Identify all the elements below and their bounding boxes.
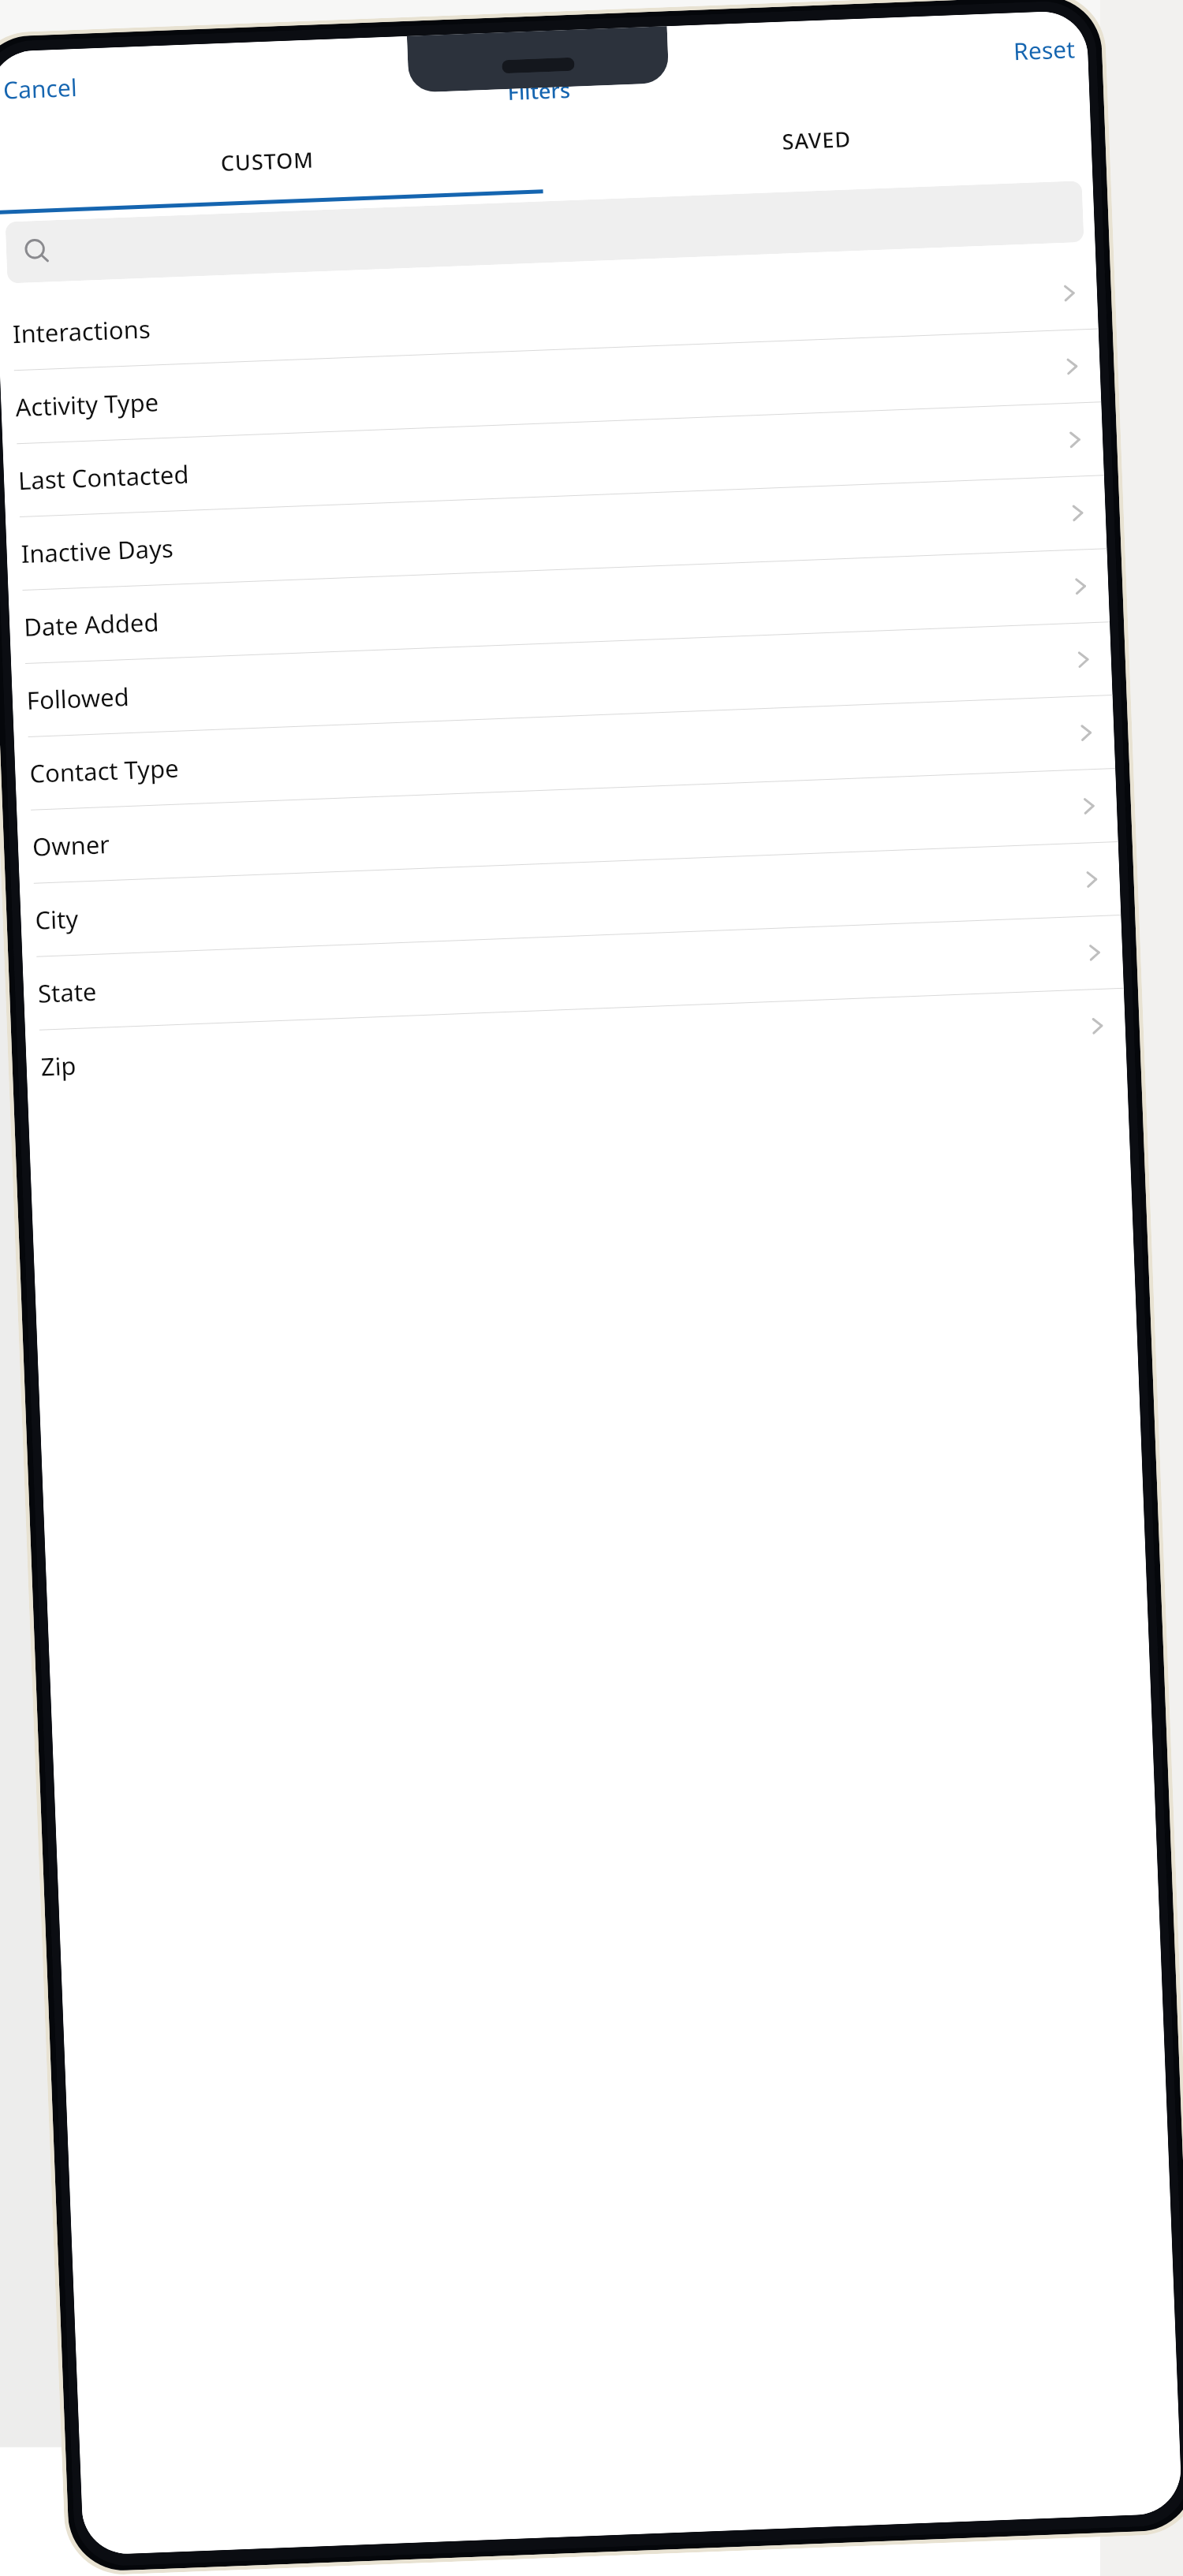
button[interactable]: Followed bbox=[11, 622, 1112, 738]
button[interactable]: Zip bbox=[25, 989, 1127, 1103]
staticText: Last Contacted bbox=[18, 424, 1065, 497]
staticText: Interactions bbox=[12, 277, 1060, 350]
button[interactable]: Reset bbox=[1000, 24, 1089, 76]
button[interactable]: CUSTOM bbox=[0, 107, 543, 215]
staticText: Reset bbox=[1013, 33, 1076, 67]
staticText: State bbox=[37, 936, 1085, 1010]
staticText: Date Added bbox=[23, 570, 1071, 643]
staticText: SAVED bbox=[781, 124, 852, 156]
button[interactable]: SAVED bbox=[540, 86, 1092, 193]
staticText: Cancel bbox=[3, 71, 78, 106]
staticText: City bbox=[35, 863, 1082, 936]
button[interactable]: Activity Type bbox=[0, 329, 1101, 445]
staticText: Filters bbox=[507, 75, 571, 106]
staticText: Activity Type bbox=[15, 350, 1063, 424]
staticText: Inactive Days bbox=[20, 497, 1068, 570]
button[interactable]: Date Added bbox=[8, 549, 1110, 664]
staticText: Followed bbox=[26, 643, 1074, 717]
button[interactable]: Contact Type bbox=[14, 696, 1115, 811]
staticText: Owner bbox=[32, 790, 1080, 863]
button[interactable]: Inactive Days bbox=[6, 476, 1107, 591]
button[interactable]: Last Contacted bbox=[3, 402, 1104, 518]
staticText: Zip bbox=[40, 1010, 1088, 1083]
button[interactable]: Interactions bbox=[0, 256, 1098, 371]
button[interactable]: State bbox=[22, 915, 1124, 1031]
button[interactable]: City bbox=[20, 842, 1121, 957]
button[interactable]: Search filters bbox=[5, 181, 1084, 283]
staticText: Contact Type bbox=[29, 717, 1077, 790]
button[interactable]: Owner bbox=[17, 769, 1118, 884]
button[interactable]: Cancel bbox=[0, 63, 91, 114]
staticText: CUSTOM bbox=[220, 145, 314, 177]
